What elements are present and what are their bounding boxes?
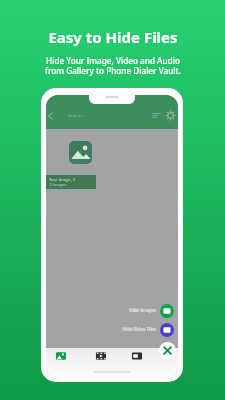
staticText: Search...	[68, 113, 85, 119]
button[interactable]: Back	[46, 111, 55, 121]
staticText: Hide Video Files	[122, 326, 156, 332]
button[interactable]: Sort	[152, 111, 161, 120]
button[interactable]: Settings	[166, 111, 175, 120]
staticText: Your Image, 2	[49, 177, 76, 182]
button[interactable]: Videos	[95, 351, 107, 361]
button[interactable]: Image	[69, 141, 92, 164]
staticText: Hide Images	[129, 307, 156, 313]
staticText: 2 Images	[49, 182, 67, 187]
staticText: Hide Your Image, Video and Audio from Ga…	[45, 55, 181, 77]
button[interactable]: Images	[55, 351, 67, 361]
staticText: Easy to Hide Files	[48, 27, 178, 47]
button[interactable]: Close	[159, 342, 176, 359]
button[interactable]: Audio	[131, 351, 143, 361]
button[interactable]: Hide Video Files	[160, 323, 174, 337]
button[interactable]: Hide Images	[160, 304, 174, 318]
